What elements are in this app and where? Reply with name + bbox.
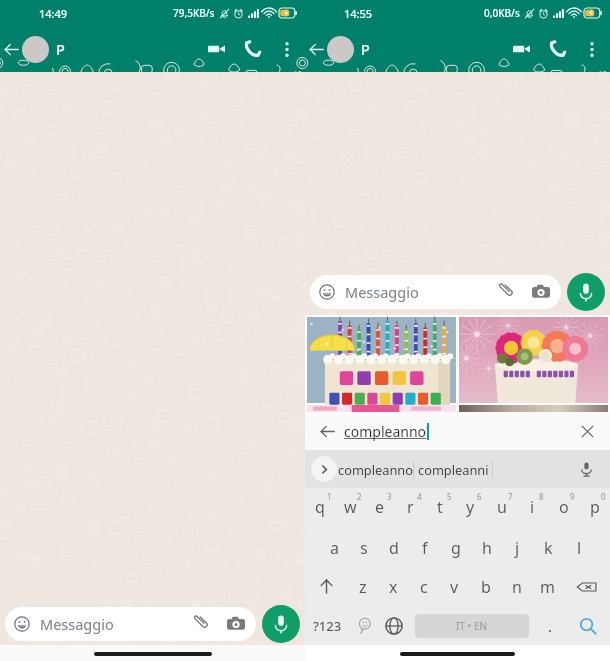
button[interactable]: Search xyxy=(565,606,610,645)
staticText: n xyxy=(512,576,522,598)
staticText: 14:49 xyxy=(39,6,68,21)
staticText: 0,0KB/s xyxy=(484,6,520,20)
button[interactable]: d xyxy=(379,528,409,567)
staticText: compleanno xyxy=(338,461,413,478)
staticText: compleanni xyxy=(418,461,489,478)
button[interactable]: Back xyxy=(305,34,327,64)
staticText: o xyxy=(559,496,569,518)
button[interactable]: p xyxy=(579,488,610,528)
staticText: m xyxy=(540,576,555,598)
staticText: 5 xyxy=(447,491,452,502)
staticText: 6 xyxy=(477,491,482,502)
staticText: 0 xyxy=(601,491,606,502)
staticText: s xyxy=(360,537,368,559)
button[interactable]: i xyxy=(517,488,548,528)
button[interactable]: Profile photo xyxy=(22,36,49,63)
button[interactable]: u xyxy=(486,488,517,528)
button[interactable]: Backspace xyxy=(563,567,610,606)
staticText: 79,5KB/s xyxy=(173,6,215,20)
staticText: i xyxy=(530,496,535,518)
button[interactable]: Voice call xyxy=(541,32,575,66)
staticText: IT • EN xyxy=(456,619,488,633)
button[interactable]: ?123 xyxy=(305,606,349,645)
button[interactable]: Shift xyxy=(305,567,348,606)
button[interactable]: Back xyxy=(305,412,610,450)
button[interactable]: Voice message xyxy=(262,605,300,643)
button[interactable]: Expand suggestions xyxy=(311,456,337,482)
button[interactable]: r xyxy=(395,488,425,528)
button[interactable]: IT • EN xyxy=(415,614,529,638)
button[interactable]: w xyxy=(335,488,365,528)
staticText: Messaggio xyxy=(345,282,419,302)
button[interactable]: h xyxy=(471,528,502,567)
button[interactable]: x xyxy=(378,567,408,606)
button[interactable]: Emoji xyxy=(349,606,379,645)
staticText: P xyxy=(56,39,65,59)
staticText: ?123 xyxy=(313,617,342,635)
button[interactable]: Video call xyxy=(199,32,233,66)
button[interactable]: Back xyxy=(0,34,22,64)
button[interactable]: More options xyxy=(271,33,303,65)
button[interactable]: o xyxy=(548,488,579,528)
staticText: u xyxy=(497,496,507,518)
button[interactable]: b xyxy=(470,567,501,606)
button[interactable]: Change language xyxy=(379,606,409,645)
button[interactable]: z xyxy=(348,567,378,606)
staticText: h xyxy=(482,537,492,559)
button[interactable]: l xyxy=(564,528,595,567)
button[interactable]: v xyxy=(439,567,470,606)
staticText: 8 xyxy=(539,491,544,502)
button[interactable]: s xyxy=(349,528,379,567)
other: Back xyxy=(317,421,337,441)
button[interactable]: y xyxy=(455,488,486,528)
staticText: v xyxy=(450,576,459,598)
button[interactable]: compleanni xyxy=(414,450,492,488)
button[interactable]: Clear xyxy=(576,420,598,442)
button[interactable]: Messaggio xyxy=(5,607,256,641)
button[interactable]: q xyxy=(305,488,335,528)
staticText: 3 xyxy=(387,491,392,502)
staticText: f xyxy=(422,537,428,559)
button[interactable]: Video call xyxy=(504,32,538,66)
button[interactable]: c xyxy=(408,567,439,606)
button[interactable]: Profile photo xyxy=(327,36,354,63)
staticText: q xyxy=(315,496,325,518)
button[interactable]: k xyxy=(533,528,564,567)
staticText: y xyxy=(466,496,475,518)
button[interactable]: e xyxy=(365,488,395,528)
button[interactable]: Voice message xyxy=(567,273,605,311)
button[interactable]: a xyxy=(319,528,349,567)
staticText: e xyxy=(375,496,385,518)
staticText: p xyxy=(590,496,600,518)
button[interactable]: Happy Birthday cake GIF xyxy=(307,317,456,403)
staticText: c xyxy=(420,576,428,598)
staticText: 1 xyxy=(327,491,332,502)
staticText: 7 xyxy=(508,491,513,502)
staticText: 9 xyxy=(570,491,575,502)
button[interactable]: Home gesture bar xyxy=(400,652,515,656)
button[interactable]: g xyxy=(440,528,471,567)
staticText: 14:55 xyxy=(344,6,373,21)
button[interactable]: Happy Birthday flowers GIF xyxy=(459,317,608,403)
staticText: k xyxy=(544,537,553,559)
staticText: Messaggio xyxy=(40,614,114,634)
button[interactable]: t xyxy=(425,488,455,528)
staticText: P xyxy=(361,39,370,59)
button[interactable]: Voice call xyxy=(236,32,270,66)
staticText: 4 xyxy=(417,491,422,502)
button[interactable]: . xyxy=(535,606,565,645)
staticText: r xyxy=(407,496,414,518)
staticText: g xyxy=(451,537,461,559)
button[interactable]: j xyxy=(502,528,533,567)
button[interactable]: Home gesture bar xyxy=(94,652,212,656)
button[interactable]: f xyxy=(409,528,440,567)
staticText: t xyxy=(437,496,443,518)
button[interactable]: m xyxy=(532,567,563,606)
staticText: compleanno xyxy=(344,422,427,441)
button[interactable]: Voice input xyxy=(574,457,598,481)
button[interactable]: compleanno xyxy=(337,450,413,488)
button[interactable]: n xyxy=(501,567,532,606)
staticText: l xyxy=(577,537,582,559)
button[interactable]: More options xyxy=(576,33,608,65)
button[interactable]: Messaggio xyxy=(310,275,561,309)
